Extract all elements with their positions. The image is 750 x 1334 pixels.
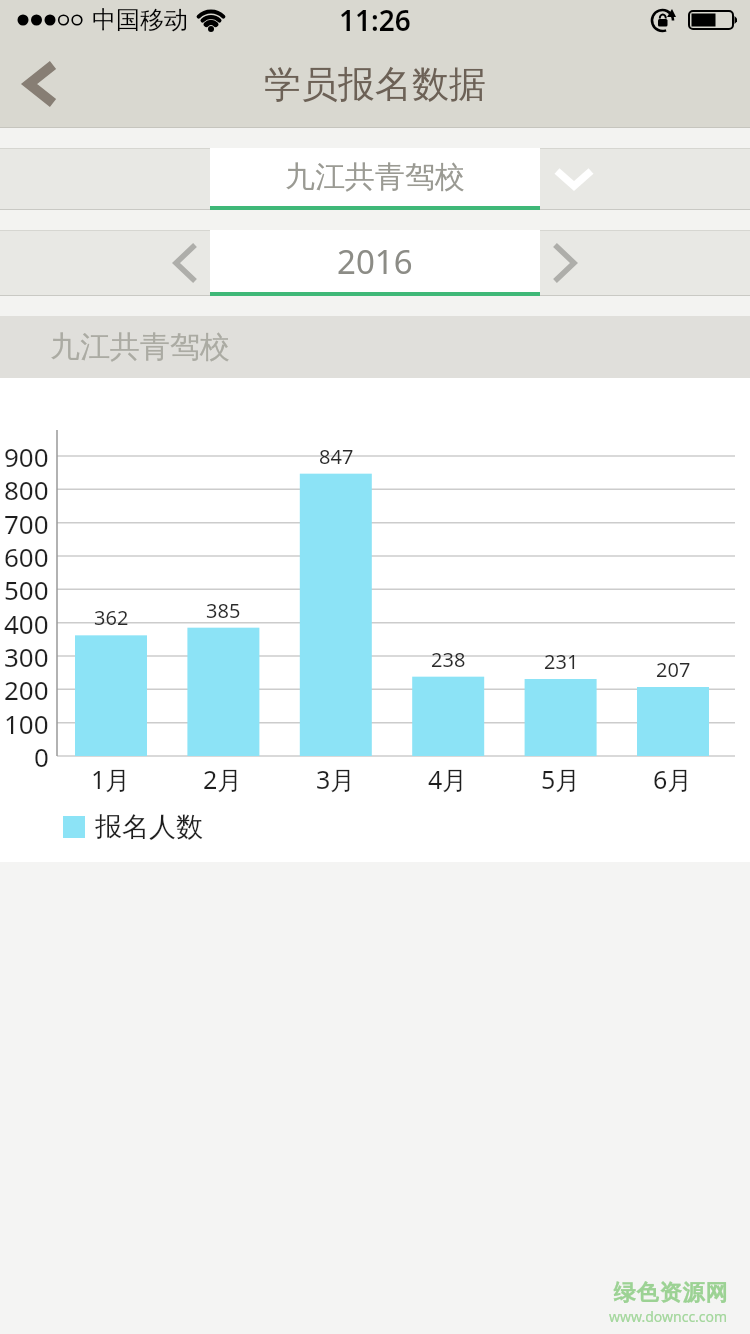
staticText: 500 (4, 572, 49, 607)
staticText: 2月 (203, 762, 243, 796)
staticText: 九江共青驾校 (50, 328, 230, 366)
button[interactable] (548, 148, 600, 210)
staticText: 238 (431, 646, 466, 673)
staticText: 847 (319, 443, 354, 470)
button[interactable]: 2016 (210, 230, 540, 296)
button[interactable]: 九江共青驾校 (210, 148, 540, 210)
staticText: 400 (4, 606, 49, 641)
staticText: 700 (4, 506, 49, 541)
staticText: 900 (4, 439, 49, 474)
staticText: 5月 (541, 762, 581, 796)
staticText: 600 (4, 539, 49, 574)
staticText: 3月 (316, 762, 356, 796)
staticText: 231 (544, 648, 579, 675)
staticText: www.downcc.com (609, 1307, 728, 1326)
staticText: 1月 (91, 762, 131, 796)
staticText: 2016 (337, 239, 413, 284)
staticText: 6月 (653, 762, 693, 796)
staticText: 报名人数 (95, 810, 203, 844)
staticText: 0 (34, 739, 49, 774)
staticText: 11:26 (339, 1, 411, 39)
staticText: 绿色资源网 (613, 1279, 728, 1307)
button[interactable] (160, 230, 210, 296)
staticText: 4月 (428, 762, 468, 796)
staticText: 300 (4, 639, 49, 674)
staticText: 100 (4, 706, 49, 741)
staticText: 中国移动 (92, 5, 188, 35)
button[interactable] (10, 52, 70, 116)
staticText: 九江共青驾校 (285, 158, 465, 196)
staticText: 学员报名数据 (264, 61, 486, 108)
staticText: 200 (4, 672, 49, 707)
staticText: 207 (656, 656, 691, 683)
button[interactable] (540, 230, 590, 296)
staticText: 362 (94, 604, 129, 631)
staticText: 800 (4, 472, 49, 507)
staticText: 385 (206, 597, 241, 624)
